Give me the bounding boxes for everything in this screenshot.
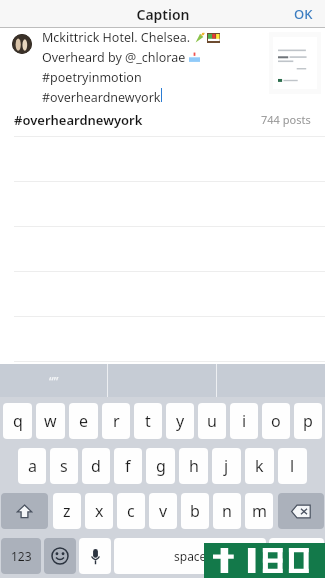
staticText: c xyxy=(127,500,135,522)
staticText: 744 posts xyxy=(261,112,311,127)
staticText: Mckittrick Hotel. Chelsea. xyxy=(42,29,191,46)
button[interactable]: l xyxy=(278,448,307,484)
staticText: p xyxy=(303,410,313,432)
button[interactable]: o xyxy=(262,403,290,439)
button[interactable]: d xyxy=(82,448,110,484)
staticText: r xyxy=(113,410,120,432)
button[interactable]: z xyxy=(53,493,81,529)
button[interactable]: m xyxy=(245,493,273,529)
staticText: OK xyxy=(294,5,313,23)
button[interactable]: a xyxy=(18,448,46,484)
button[interactable]: g xyxy=(146,448,175,484)
staticText: 123 xyxy=(11,548,32,564)
staticText: “” xyxy=(49,372,59,390)
staticText: o xyxy=(271,410,281,432)
button[interactable]: w xyxy=(36,403,65,439)
button[interactable]: Emoji xyxy=(44,538,76,574)
button[interactable]: p xyxy=(294,403,322,439)
staticText: h xyxy=(189,455,199,477)
button[interactable]: q xyxy=(3,403,32,439)
staticText: a xyxy=(28,455,37,477)
button[interactable]: i xyxy=(230,403,258,439)
button[interactable]: h xyxy=(179,448,208,484)
staticText: space xyxy=(174,548,207,564)
staticText: #overheardnewyork xyxy=(42,89,161,103)
staticText: t xyxy=(145,410,151,432)
staticText: x xyxy=(95,500,104,522)
staticText: Overheard by @_chlorae xyxy=(42,49,186,66)
button[interactable]: c xyxy=(117,493,145,529)
staticText: #overheardnewyork xyxy=(14,111,143,129)
staticText: n xyxy=(222,500,232,522)
staticText: #poetryinmotion xyxy=(42,69,142,86)
button[interactable]: u xyxy=(198,403,226,439)
button[interactable]: v xyxy=(149,493,177,529)
staticText: q xyxy=(13,410,23,432)
staticText: k xyxy=(255,455,264,477)
button[interactable]: x xyxy=(85,493,113,529)
staticText: i xyxy=(242,410,247,432)
button[interactable]: Return xyxy=(269,538,324,574)
staticText: e xyxy=(79,410,89,432)
staticText: d xyxy=(91,455,101,477)
staticText: b xyxy=(190,500,200,522)
button[interactable]: #overheardnewyork xyxy=(0,102,325,137)
button[interactable]: Delete xyxy=(278,493,324,529)
button[interactable]: y xyxy=(166,403,194,439)
button[interactable]: s xyxy=(50,448,78,484)
button[interactable]: 123 xyxy=(1,538,41,574)
button[interactable]: k xyxy=(245,448,274,484)
staticText: u xyxy=(207,410,217,432)
button[interactable]: Shift xyxy=(1,493,48,529)
staticText: s xyxy=(60,455,68,477)
button[interactable]: Dictation xyxy=(79,538,111,574)
button[interactable]: n xyxy=(213,493,241,529)
button[interactable]: OK xyxy=(282,1,325,27)
button[interactable]: j xyxy=(212,448,241,484)
staticText: Caption xyxy=(136,5,190,24)
button[interactable]: f xyxy=(114,448,142,484)
staticText: f xyxy=(125,455,131,477)
staticText: w xyxy=(44,410,57,432)
button[interactable]: e xyxy=(69,403,98,439)
button[interactable]: r xyxy=(102,403,130,439)
staticText: l xyxy=(290,455,295,477)
button[interactable]: t xyxy=(134,403,162,439)
staticText: j xyxy=(224,455,229,477)
staticText: m xyxy=(252,500,267,522)
staticText: v xyxy=(159,500,168,522)
staticText: y xyxy=(176,410,185,432)
button[interactable]: b xyxy=(181,493,209,529)
staticText: g xyxy=(156,455,166,477)
staticText: z xyxy=(63,500,71,522)
button[interactable]: space xyxy=(114,538,266,574)
